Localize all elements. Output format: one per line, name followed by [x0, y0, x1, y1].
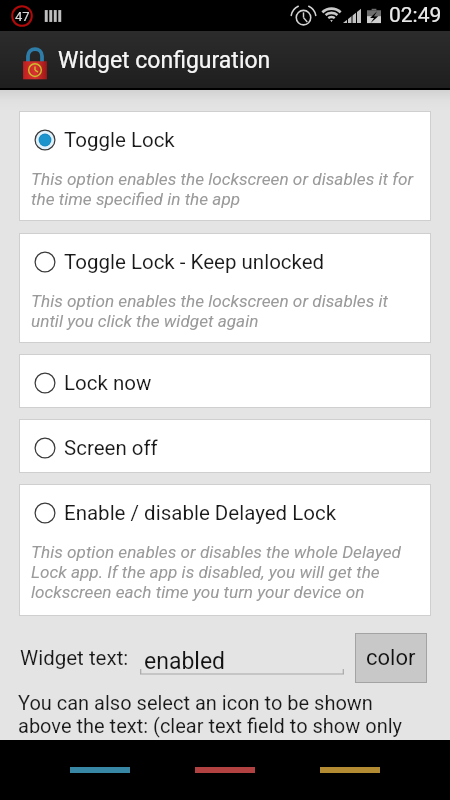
staticText: lockscreen each time you turn your devic… [31, 582, 365, 602]
staticText: the time specified in the app [31, 189, 241, 209]
staticText: You can also select an icon to be shown [18, 691, 373, 714]
staticText: This option enables or disables the whol… [31, 542, 401, 562]
staticText: This option enables the lockscreen or di… [31, 169, 414, 189]
staticText: until you click the widget again [31, 311, 259, 331]
staticText: Enable / disable Delayed Lock [64, 501, 337, 525]
staticText: 02:49 [389, 3, 442, 28]
staticText: 47 [15, 9, 30, 24]
staticText: color [366, 645, 416, 671]
staticText: Toggle Lock - Keep unlocked [64, 250, 325, 274]
button[interactable]: Toggle Lock - Keep unlocked [19, 233, 431, 343]
staticText: Widget text: [20, 646, 129, 670]
button[interactable]: Toggle Lock [19, 111, 431, 221]
button[interactable]: Lock now [19, 354, 431, 408]
staticText: Lock now [64, 371, 152, 395]
staticText: enabled [144, 648, 226, 675]
button[interactable]: color [355, 633, 427, 683]
staticText: Screen off [64, 436, 158, 460]
button[interactable]: Screen off [19, 419, 431, 473]
staticText: above the text: (clear text field to sho… [18, 714, 403, 737]
button[interactable]: Enable / disable Delayed Lock [19, 484, 431, 616]
staticText: This option enables the lockscreen or di… [31, 291, 388, 311]
staticText: Lock app. If the app is disabled, you wi… [31, 562, 380, 582]
staticText: Toggle Lock [64, 128, 175, 152]
staticText: Widget configuration [58, 47, 271, 74]
